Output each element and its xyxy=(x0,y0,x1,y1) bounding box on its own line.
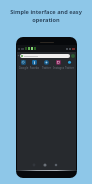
button[interactable]: Back xyxy=(32,163,36,167)
staticText: Twitter xyxy=(41,66,52,70)
staticText: Facebook xyxy=(29,66,40,70)
button[interactable]: Twitter xyxy=(41,60,52,70)
button[interactable] xyxy=(20,54,70,58)
staticText: Simple interface and easy operation xyxy=(2,8,90,24)
button[interactable]: Back xyxy=(17,54,20,57)
button[interactable]: Home xyxy=(43,163,47,167)
button[interactable]: Twitter xyxy=(64,60,75,70)
button[interactable]: Facebook xyxy=(29,60,40,70)
staticText: Google xyxy=(18,66,29,70)
button[interactable]: Instagram xyxy=(53,60,64,70)
staticText: Twitter xyxy=(64,66,75,70)
button[interactable]: Menu xyxy=(71,54,75,58)
staticText: Instagram xyxy=(53,66,64,70)
button[interactable]: Google xyxy=(18,60,29,70)
button[interactable]: Recents xyxy=(54,163,58,167)
